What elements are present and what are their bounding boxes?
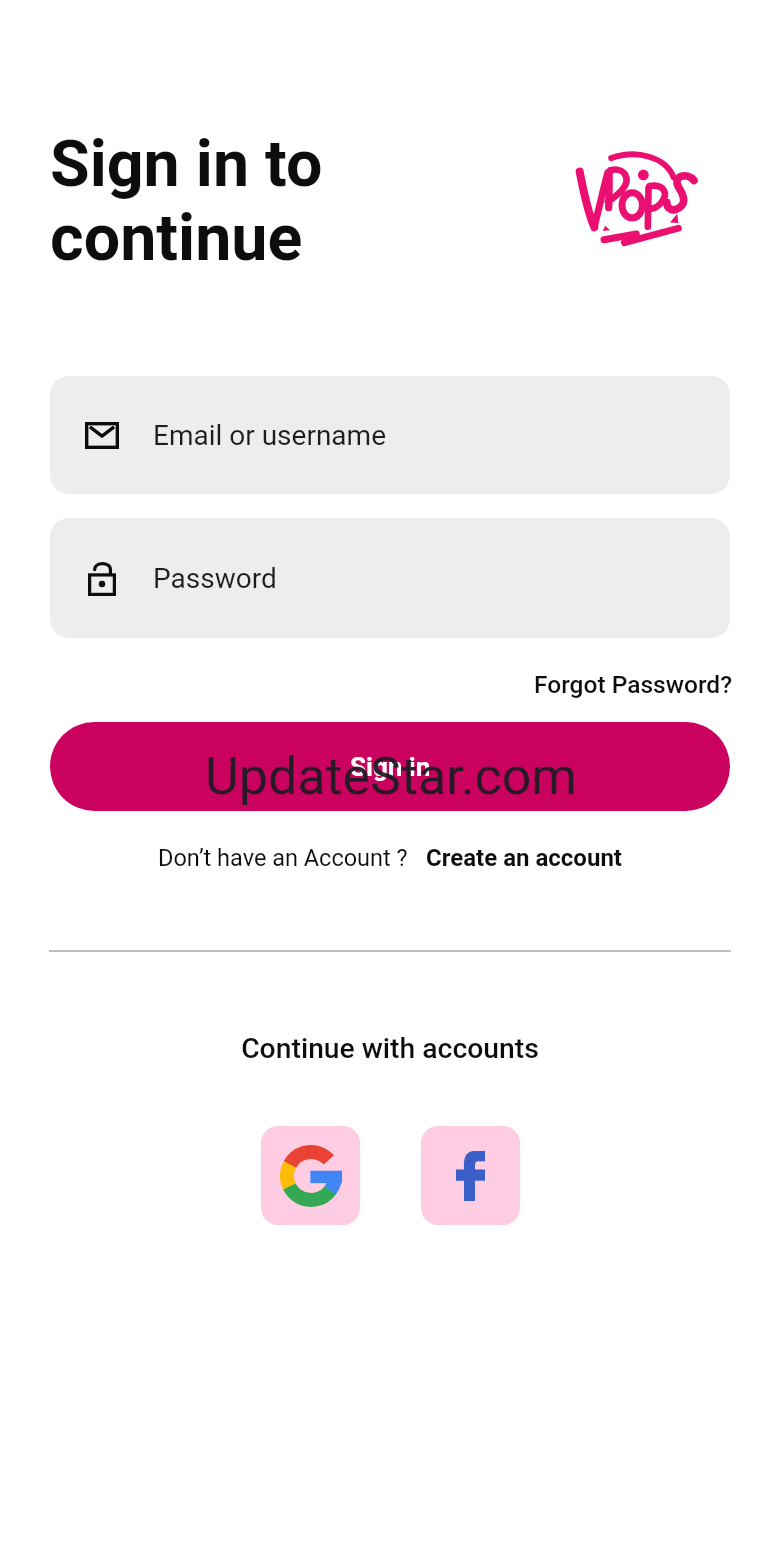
staticText: Don’t have an Account ? xyxy=(158,844,408,872)
staticText: Email or username xyxy=(153,419,386,452)
staticText: UpdateStar.com xyxy=(205,746,577,807)
staticText: Forgot Password? xyxy=(534,670,733,699)
button[interactable]: Email or username xyxy=(50,376,730,494)
button[interactable]: Forgot Password? xyxy=(522,662,745,707)
button[interactable]: Create an account xyxy=(426,844,622,872)
button[interactable]: Sign in xyxy=(50,722,730,811)
staticText: Create an account xyxy=(426,844,622,872)
staticText: Continue with accounts xyxy=(241,1032,539,1065)
staticText: Password xyxy=(153,562,277,595)
button[interactable]: Password xyxy=(50,518,730,638)
button[interactable]: Continue with Google xyxy=(261,1126,360,1225)
button[interactable]: Continue with Facebook xyxy=(421,1126,520,1225)
staticText: Sign in to continue xyxy=(50,126,323,276)
staticText: Sign in xyxy=(350,752,431,782)
